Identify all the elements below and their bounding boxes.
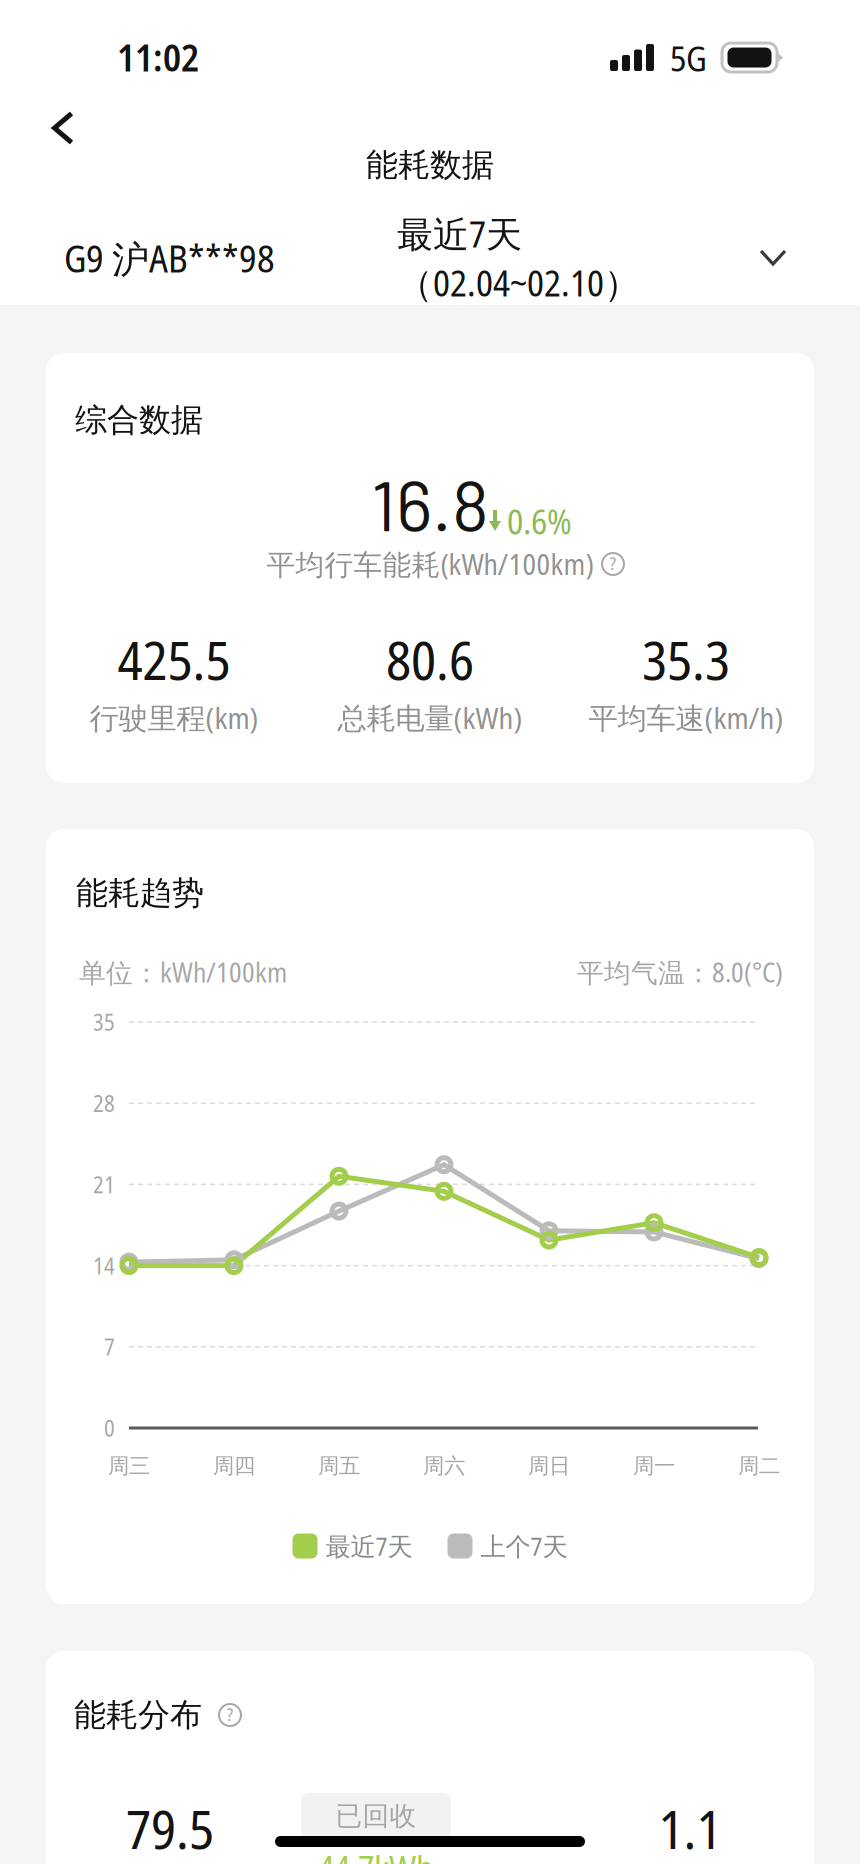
staticText: 平均气温：8.0(°C) [577,954,783,990]
staticText: ? [609,550,616,576]
staticText: 能耗分布 [74,1695,202,1735]
button[interactable]: Back [19,84,107,172]
staticText: 周日 [528,1453,570,1479]
staticText: 35 [93,1007,115,1037]
staticText: 平均行车能耗(kWh/100km) [266,544,593,583]
staticText: 平均车速(km/h) [588,698,783,738]
staticText: 5G [670,34,707,82]
staticText: 0.6% [507,497,572,545]
staticText: 上个7天 [480,1529,567,1563]
staticText: 21 [93,1169,115,1200]
staticText: 28 [93,1088,115,1119]
staticText: 35.3 [642,623,730,696]
staticText: 79.5 [126,1792,214,1864]
staticText: 总耗电量(kWh) [337,698,522,738]
staticText: 能耗数据 [366,145,494,185]
staticText: 16.8 [371,461,489,545]
staticText: 能耗趋势 [76,873,204,913]
staticText: 已回收 [335,1799,416,1833]
staticText: 0 [104,1413,115,1443]
staticText: G9 沪AB***98 [64,232,275,283]
staticText: 7 [104,1331,115,1362]
staticText: 11:02 [117,32,199,82]
staticText: 425.5 [117,623,230,696]
staticText: 周五 [318,1453,360,1479]
staticText: 周二 [738,1453,780,1479]
staticText: 单位：kWh/100km [79,954,287,990]
staticText: 周六 [423,1453,465,1479]
staticText: 综合数据 [75,400,203,440]
staticText: 1.1 [658,1792,721,1864]
staticText: ? [226,1701,233,1727]
staticText: 行驶里程(km) [89,698,258,738]
staticText: 14 [93,1250,115,1281]
button[interactable]: G9 沪AB***98 [64,228,344,288]
staticText: 最近7天 [325,1529,412,1563]
staticText: 最近7天（02.04~02.10） [397,209,640,307]
staticText: 80.6 [386,623,474,696]
staticText: 周三 [108,1453,150,1479]
staticText: 44.7kWh [318,1844,434,1864]
button[interactable]: 最近7天（02.04~02.10） [397,228,787,288]
staticText: 周一 [633,1453,675,1479]
staticText: 周四 [213,1453,255,1479]
